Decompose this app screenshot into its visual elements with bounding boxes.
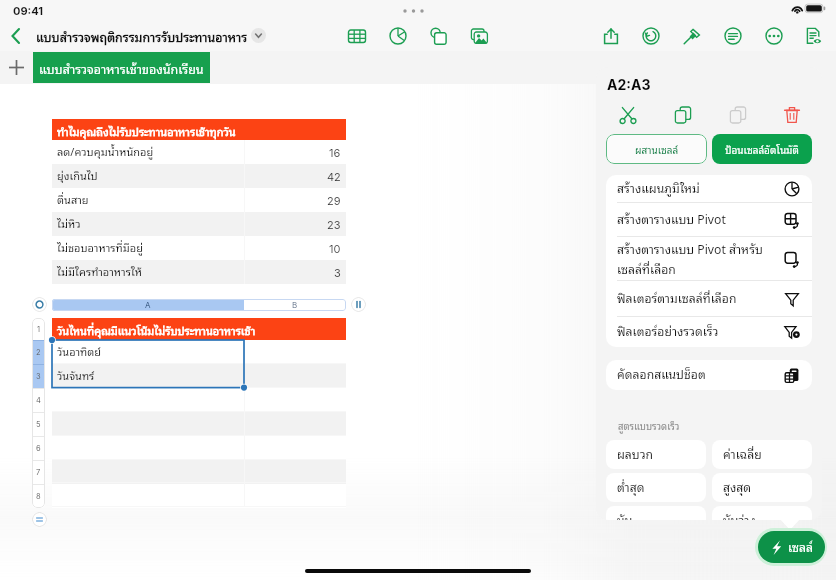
button[interactable]: Document bbox=[803, 26, 823, 46]
button[interactable]: ยุ่งเกินไป bbox=[52, 164, 346, 188]
staticText: 4 bbox=[36, 396, 41, 405]
button[interactable]: เซลล์ bbox=[758, 531, 825, 563]
button[interactable]: Format painter bbox=[682, 26, 702, 46]
staticText: ลด/ควบคุมน้ำหนักอยู่ bbox=[57, 142, 154, 160]
button[interactable]: สร้างแผนภูมิใหม่ bbox=[606, 175, 812, 202]
button[interactable]: วันอาทิตย์ bbox=[52, 340, 346, 364]
button[interactable]: Media bbox=[469, 26, 489, 46]
button[interactable]: Cut bbox=[600, 102, 655, 128]
button[interactable]: Undo bbox=[641, 26, 661, 46]
button[interactable]: Share bbox=[601, 26, 621, 46]
button[interactable]: สูงสุด bbox=[712, 473, 812, 502]
button[interactable]: Column options bbox=[351, 297, 366, 312]
staticText: 29 bbox=[327, 194, 341, 207]
staticText: เซลล์ bbox=[788, 537, 814, 557]
button[interactable]: นับ bbox=[606, 506, 706, 520]
staticText: 3 bbox=[334, 266, 341, 279]
button[interactable]: ต่ำสุด bbox=[606, 473, 706, 502]
staticText: ตื่นสาย bbox=[57, 190, 89, 208]
button[interactable]: ฟิลเตอร์ตามเซลล์ที่เลือก bbox=[606, 281, 812, 316]
button[interactable]: วันจันทร์ bbox=[52, 364, 346, 388]
staticText: 23 bbox=[327, 218, 341, 231]
staticText: 5 bbox=[36, 420, 41, 429]
staticText: ฟิลเตอร์อย่างรวดเร็ว bbox=[617, 321, 719, 341]
button[interactable]: ไม่หิว bbox=[52, 212, 346, 236]
button[interactable]: ไม่มีใครทำอาหารให้ bbox=[52, 260, 346, 284]
staticText: 1 bbox=[37, 325, 41, 334]
button[interactable]: Chart bbox=[388, 26, 408, 46]
staticText: เซลล์ที่เลือก bbox=[617, 259, 676, 279]
staticText: ผลบวก bbox=[617, 444, 654, 464]
staticText: ฟิลเตอร์ตามเซลล์ที่เลือก bbox=[617, 288, 737, 308]
button[interactable]: Document options bbox=[251, 28, 266, 43]
button[interactable]: สร้างตารางแบบ Pivot สำหรับ bbox=[606, 237, 812, 280]
button[interactable]: ไม่ชอบอาหารที่มีอยู่ bbox=[52, 236, 346, 260]
staticText: ต่ำสุด bbox=[617, 477, 645, 497]
staticText: ทำไมคุณถึงไม่รับประทานอาหารเช้าทุกวัน bbox=[57, 122, 236, 140]
staticText: สร้างตารางแบบ Pivot bbox=[617, 209, 726, 229]
staticText: สร้างตารางแบบ Pivot สำหรับ bbox=[617, 239, 763, 259]
staticText: วันจันทร์ bbox=[57, 366, 95, 384]
staticText: วันอาทิตย์ bbox=[57, 342, 102, 360]
staticText: 2 bbox=[36, 348, 41, 357]
button[interactable]: 5 bbox=[32, 412, 45, 436]
button[interactable]: Format bbox=[723, 26, 743, 46]
button[interactable]: ป้อนเซลล์อัตโนมัติ bbox=[712, 134, 812, 164]
button[interactable]: 7 bbox=[32, 460, 45, 484]
button[interactable]: Shape bbox=[428, 26, 448, 46]
button[interactable]: สร้างตารางแบบ Pivot bbox=[606, 203, 812, 236]
staticText: นับว่าง bbox=[723, 510, 756, 520]
button[interactable]: ผสานเซลล์ bbox=[606, 134, 707, 164]
button[interactable] bbox=[52, 388, 346, 412]
button[interactable]: Copy bbox=[655, 102, 710, 128]
staticText: สูตรแบบรวดเร็ว bbox=[618, 418, 680, 433]
staticText: ไม่หิว bbox=[57, 214, 81, 232]
staticText: 7 bbox=[36, 468, 41, 477]
button[interactable]: ผลบวก bbox=[606, 440, 706, 469]
button[interactable]: More bbox=[764, 26, 784, 46]
button[interactable]: คัดลอกสแนปช็อต bbox=[606, 360, 812, 390]
staticText: สร้างแผนภูมิใหม่ bbox=[617, 178, 700, 198]
staticText: ป้อนเซลล์อัตโนมัติ bbox=[725, 141, 799, 157]
button[interactable]: B bbox=[244, 299, 346, 311]
staticText: A bbox=[145, 300, 151, 310]
staticText: 10 bbox=[329, 242, 341, 255]
button[interactable]: 1 bbox=[32, 318, 45, 340]
staticText: แบบสำรวจอาหารเช้าของนักเรียน bbox=[39, 58, 204, 78]
staticText: 8 bbox=[36, 492, 41, 501]
staticText: 16 bbox=[329, 146, 341, 159]
staticText: 6 bbox=[36, 444, 41, 453]
button[interactable]: Paste bbox=[710, 102, 765, 128]
staticText: A2:A3 bbox=[607, 76, 651, 93]
staticText: แบบสำรวจพฤติกรรมการรับประทานอาหาร bbox=[36, 26, 248, 46]
button[interactable]: Table bbox=[347, 26, 367, 46]
staticText: 3 bbox=[36, 372, 41, 381]
button[interactable]: ฟิลเตอร์อย่างรวดเร็ว bbox=[606, 317, 812, 347]
staticText: 09:41 bbox=[13, 4, 43, 17]
staticText: ไม่มีใครทำอาหารให้ bbox=[57, 262, 142, 280]
button[interactable]: Table settings bbox=[32, 297, 47, 312]
button[interactable]: ลด/ควบคุมน้ำหนักอยู่ bbox=[52, 140, 346, 164]
button[interactable]: ตื่นสาย bbox=[52, 188, 346, 212]
button[interactable]: ค่าเฉลี่ย bbox=[712, 440, 812, 469]
button[interactable]: Add sheet bbox=[5, 56, 28, 79]
button[interactable]: นับว่าง bbox=[712, 506, 812, 520]
button[interactable]: 4 bbox=[32, 388, 45, 412]
staticText: ผสานเซลล์ bbox=[635, 141, 679, 157]
button[interactable]: 2 bbox=[32, 340, 45, 364]
button[interactable]: 8 bbox=[32, 484, 45, 508]
button[interactable]: Row options bbox=[32, 512, 47, 527]
button[interactable]: Delete bbox=[765, 102, 818, 128]
staticText: สูงสุด bbox=[723, 477, 752, 497]
staticText: 42 bbox=[327, 170, 341, 183]
button[interactable]: A bbox=[52, 299, 244, 311]
button[interactable]: 6 bbox=[32, 436, 45, 460]
button[interactable]: แบบสำรวจอาหารเช้าของนักเรียน bbox=[33, 52, 210, 83]
button[interactable]: Back bbox=[4, 24, 28, 48]
staticText: นับ bbox=[617, 510, 633, 520]
button[interactable]: 3 bbox=[32, 364, 45, 388]
